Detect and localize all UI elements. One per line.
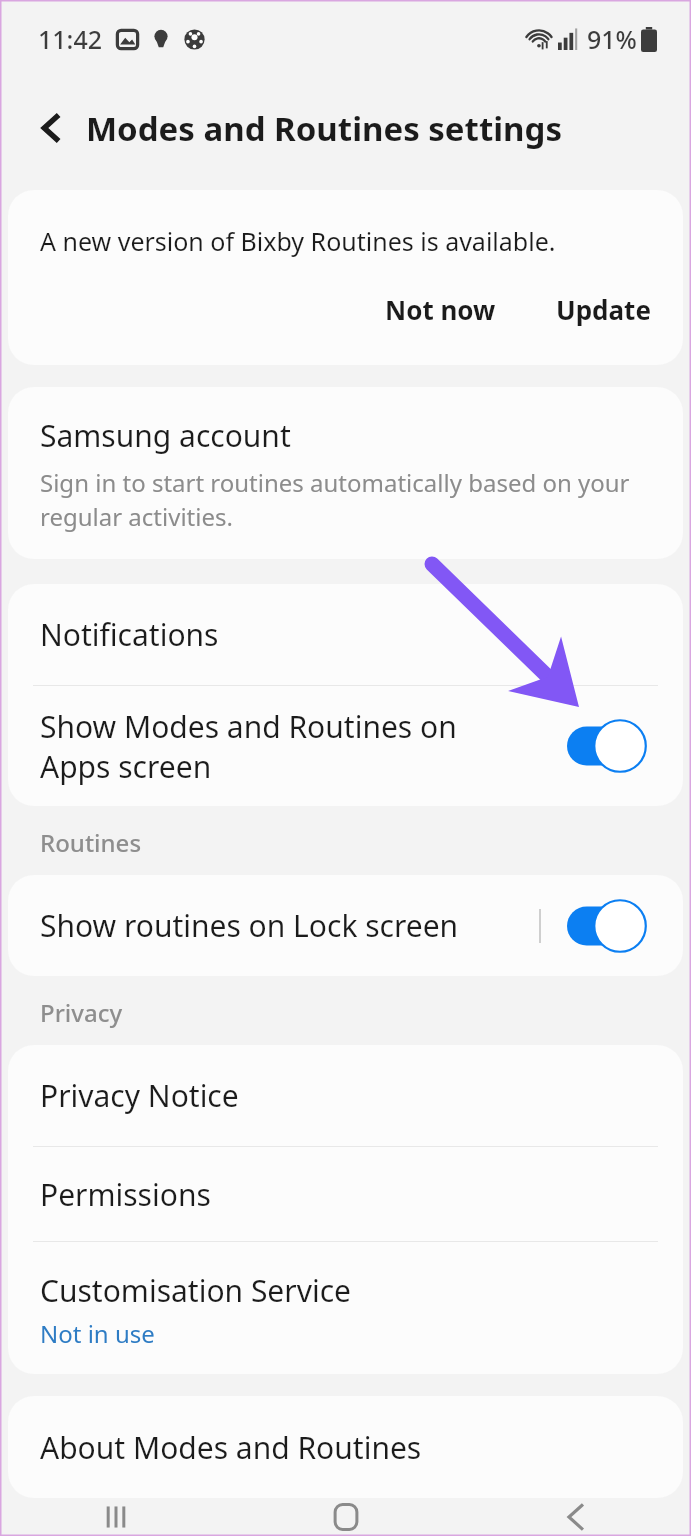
staticText: A new version of Bixby Routines is avail… bbox=[40, 224, 556, 258]
staticText: Customisation Service bbox=[40, 1270, 351, 1311]
staticText: Show Modes and Routines on Apps screen bbox=[40, 706, 490, 787]
staticText: Privacy bbox=[40, 996, 123, 1029]
button[interactable]: About Modes and Routines bbox=[8, 1396, 683, 1498]
staticText: Routines bbox=[40, 826, 142, 859]
staticText: Samsung account bbox=[40, 415, 291, 456]
button[interactable]: Back bbox=[26, 103, 76, 153]
staticText: Permissions bbox=[40, 1174, 211, 1215]
staticText: Update bbox=[556, 292, 651, 327]
button[interactable]: Not now bbox=[373, 284, 508, 335]
staticText: 11:42 bbox=[38, 22, 103, 56]
staticText: About Modes and Routines bbox=[40, 1427, 422, 1468]
button[interactable]: Show routines on Lock screen bbox=[8, 875, 683, 976]
staticText: Modes and Routines settings bbox=[86, 106, 562, 151]
staticText: Not now bbox=[385, 292, 496, 327]
button[interactable]: Back bbox=[461, 1498, 691, 1536]
button[interactable]: Privacy Notice bbox=[8, 1045, 683, 1146]
button[interactable]: Update bbox=[544, 284, 663, 335]
button[interactable]: Notifications bbox=[8, 584, 683, 685]
button[interactable]: Toggle on bbox=[567, 898, 651, 954]
staticText: Privacy Notice bbox=[40, 1075, 239, 1116]
button[interactable]: Customisation Service bbox=[8, 1242, 683, 1374]
button[interactable]: Permissions bbox=[8, 1147, 683, 1241]
button[interactable]: Home bbox=[231, 1498, 461, 1536]
staticText: Notifications bbox=[40, 614, 219, 655]
button[interactable]: Toggle on bbox=[567, 718, 651, 774]
staticText: 91% bbox=[587, 22, 637, 56]
staticText: Sign in to start routines automatically … bbox=[40, 466, 643, 533]
staticText: Show routines on Lock screen bbox=[40, 905, 459, 946]
staticText: Not in use bbox=[40, 1317, 155, 1350]
button[interactable]: Samsung account bbox=[8, 387, 683, 559]
button[interactable]: Recents bbox=[0, 1498, 231, 1536]
button[interactable]: Show Modes and Routines on Apps screen bbox=[8, 686, 683, 806]
